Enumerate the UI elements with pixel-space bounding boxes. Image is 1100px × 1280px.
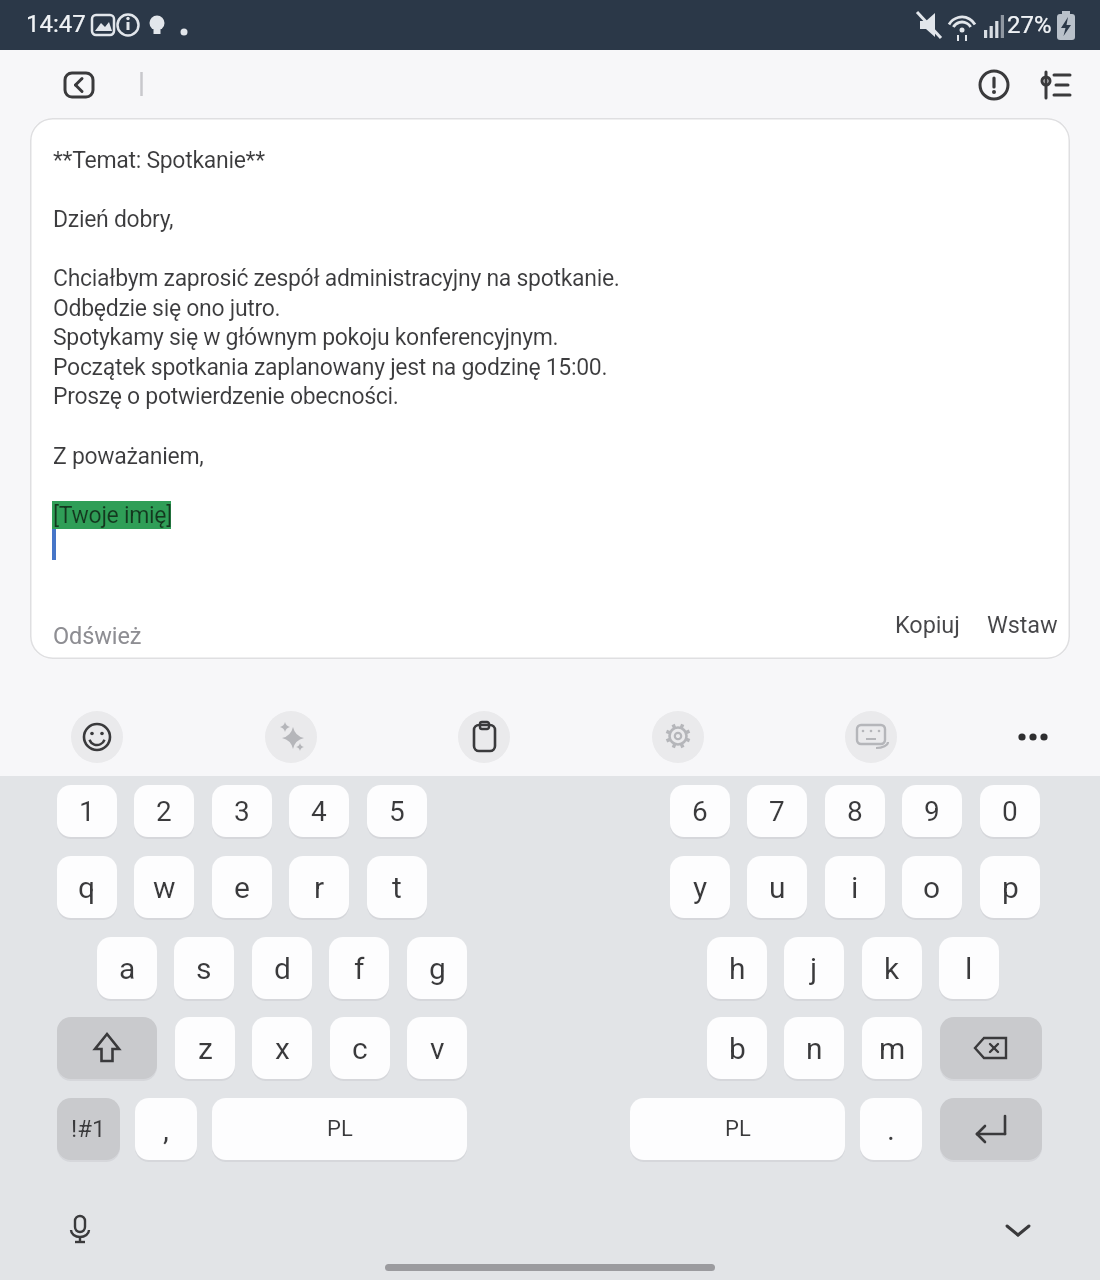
button[interactable]: 3 — [212, 785, 272, 837]
button[interactable]: 9 — [902, 785, 962, 837]
staticText: p — [1002, 870, 1019, 905]
button[interactable]: 7 — [747, 785, 807, 837]
button[interactable]: y — [670, 856, 730, 918]
button[interactable]: , — [135, 1098, 197, 1160]
staticText: k — [884, 951, 900, 986]
staticText: n — [806, 1031, 823, 1066]
button[interactable]: m — [862, 1017, 922, 1079]
button[interactable]: w — [134, 856, 194, 918]
button[interactable] — [56, 1206, 104, 1254]
button[interactable]: d — [252, 937, 312, 999]
button[interactable]: c — [330, 1017, 390, 1079]
staticText: Z poważaniem, — [53, 443, 204, 470]
button[interactable]: 4 — [289, 785, 349, 837]
staticText: 2 — [156, 795, 172, 828]
staticText: z — [198, 1031, 213, 1066]
button[interactable]: h — [707, 937, 767, 999]
button[interactable]: !#1 — [57, 1098, 120, 1160]
staticText: d — [274, 951, 291, 986]
staticText: Początek spotkania zaplanowany jest na g… — [53, 354, 608, 381]
button[interactable]: PL — [630, 1098, 845, 1160]
staticText: j — [810, 951, 818, 986]
staticText: 3 — [234, 795, 250, 828]
button[interactable] — [940, 1098, 1042, 1160]
staticText: b — [729, 1031, 746, 1066]
button[interactable]: n — [784, 1017, 844, 1079]
staticText: PL — [327, 1116, 353, 1142]
button[interactable]: . — [860, 1098, 922, 1160]
staticText: 6 — [692, 795, 708, 828]
button[interactable]: Odśwież — [40, 600, 180, 650]
button[interactable]: j — [784, 937, 844, 999]
button[interactable]: p — [980, 856, 1040, 918]
button[interactable]: 1 — [57, 785, 117, 837]
button[interactable] — [265, 711, 317, 763]
staticText: l — [965, 951, 973, 986]
button[interactable]: t — [367, 856, 427, 918]
staticText: **Temat: Spotkanie** — [53, 147, 265, 174]
button[interactable]: i — [825, 856, 885, 918]
staticText: 0 — [1002, 795, 1018, 828]
staticText: 9 — [924, 795, 940, 828]
button[interactable]: Wstaw — [975, 600, 1070, 650]
button[interactable]: v — [407, 1017, 467, 1079]
button[interactable]: s — [174, 937, 234, 999]
staticText: g — [429, 951, 446, 986]
button[interactable]: u — [747, 856, 807, 918]
button[interactable]: f — [329, 937, 389, 999]
button[interactable] — [974, 65, 1014, 105]
button[interactable]: b — [707, 1017, 767, 1079]
button[interactable] — [994, 1206, 1042, 1254]
staticText: v — [430, 1031, 445, 1066]
button[interactable] — [58, 66, 100, 103]
button[interactable]: o — [902, 856, 962, 918]
button[interactable]: q — [57, 856, 117, 918]
button[interactable]: l — [939, 937, 999, 999]
button[interactable]: r — [289, 856, 349, 918]
staticText: Wstaw — [987, 611, 1058, 639]
staticText: , — [163, 1112, 169, 1147]
button[interactable]: a — [97, 937, 157, 999]
button[interactable]: e — [212, 856, 272, 918]
button[interactable]: PL — [212, 1098, 467, 1160]
button[interactable] — [845, 711, 897, 763]
button[interactable]: k — [862, 937, 922, 999]
staticText: f — [354, 951, 365, 986]
staticText: 1 — [79, 795, 95, 828]
staticText: . — [887, 1112, 895, 1147]
staticText: y — [693, 870, 708, 905]
staticText: t — [392, 870, 402, 905]
button[interactable]: Kopiuj — [880, 600, 975, 650]
staticText: 7 — [769, 795, 785, 828]
staticText: PL — [725, 1116, 751, 1142]
button[interactable]: 5 — [367, 785, 427, 837]
staticText: !#1 — [71, 1115, 106, 1143]
staticText: Odśwież — [53, 622, 142, 650]
button[interactable] — [71, 711, 123, 763]
button[interactable]: 8 — [825, 785, 885, 837]
staticText: s — [196, 951, 212, 986]
button[interactable] — [940, 1017, 1042, 1079]
button[interactable]: z — [175, 1017, 235, 1079]
staticText: e — [234, 870, 250, 905]
button[interactable]: 0 — [980, 785, 1040, 837]
button[interactable] — [652, 711, 704, 763]
staticText: h — [729, 951, 746, 986]
staticText: c — [352, 1031, 368, 1066]
button[interactable]: g — [407, 937, 467, 999]
staticText: i — [851, 870, 859, 905]
staticText: Kopiuj — [895, 611, 960, 639]
button[interactable]: 6 — [670, 785, 730, 837]
button[interactable] — [1030, 65, 1078, 105]
staticText: Chciałbym zaprosić zespół administracyjn… — [53, 265, 620, 292]
staticText: r — [314, 870, 325, 905]
button[interactable]: x — [252, 1017, 312, 1079]
staticText: m — [879, 1031, 906, 1066]
staticText: 27% — [1007, 11, 1052, 39]
button[interactable] — [458, 711, 510, 763]
staticText: x — [275, 1031, 290, 1066]
staticText: u — [769, 870, 786, 905]
staticText: q — [78, 870, 96, 905]
button[interactable]: 2 — [134, 785, 194, 837]
button[interactable] — [57, 1017, 157, 1079]
